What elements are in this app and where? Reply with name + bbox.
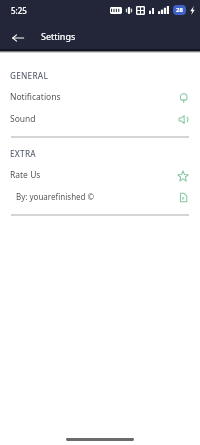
staticText: Rate Us	[10, 169, 41, 181]
staticText: GENERAL	[10, 70, 49, 81]
staticText: By: youarefinished ©	[16, 191, 95, 202]
staticText: 28	[176, 6, 183, 14]
staticText: Sound	[10, 113, 36, 125]
staticText: Settings	[41, 30, 76, 42]
button[interactable]: Rate Us	[0, 164, 200, 185]
button[interactable]: By: youarefinished ©	[0, 186, 200, 207]
staticText: 5:25	[11, 5, 27, 16]
staticText: EXTRA	[10, 148, 36, 159]
button[interactable]: Back	[7, 27, 28, 48]
button[interactable]: Sound	[0, 108, 200, 129]
button[interactable]: Notifications	[0, 86, 200, 107]
staticText: Notifications	[10, 91, 61, 103]
